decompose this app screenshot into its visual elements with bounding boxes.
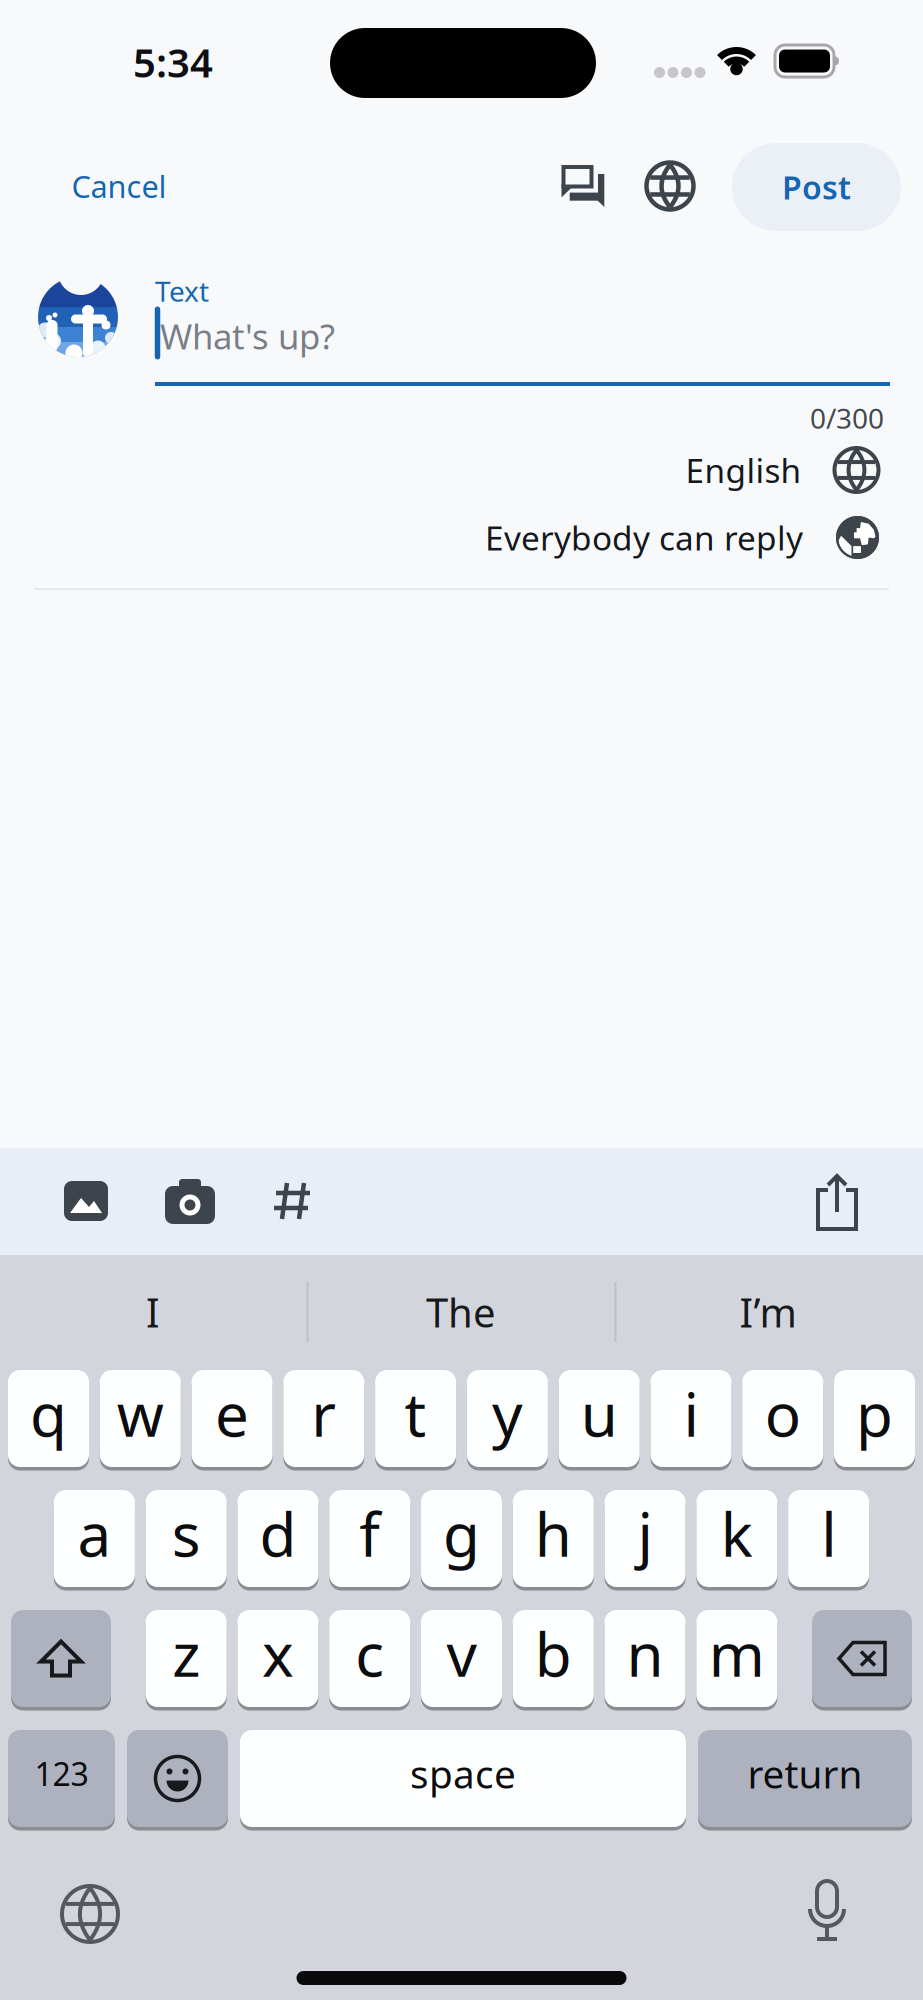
staticText: m [709,1614,765,1693]
button[interactable]: Camera [165,1178,215,1224]
button[interactable]: Share [815,1174,859,1232]
staticText: x [262,1614,294,1693]
staticText: a [77,1494,111,1573]
button[interactable]: space [240,1730,686,1827]
button[interactable]: z [146,1610,227,1707]
button[interactable]: GIF [274,1182,312,1220]
button[interactable]: v [421,1610,502,1707]
staticText: 0/300 [810,399,884,437]
button[interactable]: j [605,1490,686,1587]
button[interactable]: Drafts [560,164,606,210]
button[interactable]: r [283,1370,364,1467]
button[interactable]: u [559,1370,640,1467]
button[interactable]: b [513,1610,594,1707]
button[interactable]: o [742,1370,823,1467]
button[interactable]: Next keyboard [62,1886,118,1942]
staticText: z [172,1614,200,1693]
button[interactable]: k [696,1490,777,1587]
staticText: p [856,1374,893,1453]
button[interactable]: Cancel [71,166,166,206]
button[interactable]: i [650,1370,731,1467]
staticText: f [359,1494,380,1573]
button[interactable]: h [513,1490,594,1587]
staticText: 5:34 [133,35,213,88]
staticText: r [311,1374,336,1453]
button[interactable]: x [237,1610,318,1707]
button[interactable]: w [100,1370,181,1467]
staticText: v [446,1614,476,1693]
button[interactable]: Photos [64,1181,108,1221]
staticText: j [638,1494,653,1573]
button[interactable]: p [834,1370,915,1467]
staticText: d [259,1494,296,1573]
staticText: return [747,1748,862,1799]
button[interactable]: a [54,1490,135,1587]
button[interactable]: e [192,1370,273,1467]
staticText: The [426,1285,496,1338]
button[interactable]: Shift [11,1610,111,1707]
staticText: 123 [34,1752,88,1795]
staticText: Post [782,166,851,208]
button[interactable]: English [685,448,878,492]
button[interactable]: Post [732,143,901,231]
staticText: i [683,1374,698,1453]
button[interactable]: Everybody can reply [485,515,879,560]
staticText: b [535,1614,572,1693]
button[interactable]: q [8,1370,89,1467]
button[interactable]: f [329,1490,410,1587]
staticText: space [410,1748,516,1799]
staticText: k [721,1494,753,1573]
button[interactable]: m [696,1610,777,1707]
button[interactable]: Emoji [127,1730,228,1827]
staticText: e [215,1374,249,1453]
staticText: o [765,1374,801,1453]
staticText: I’m [739,1285,796,1338]
button[interactable]: return [698,1730,912,1827]
staticText: u [581,1374,618,1453]
staticText: l [821,1494,836,1573]
staticText: English [685,448,801,492]
button[interactable]: Dictation [805,1881,849,1943]
button[interactable]: Delete [812,1610,912,1707]
staticText: n [627,1614,664,1693]
button[interactable]: n [605,1610,686,1707]
button[interactable]: s [146,1490,227,1587]
staticText: h [535,1494,572,1573]
staticText: c [355,1614,384,1693]
button[interactable]: g [421,1490,502,1587]
staticText: g [443,1494,480,1573]
button[interactable]: The [426,1285,496,1338]
button[interactable]: l [788,1490,869,1587]
staticText: q [30,1374,67,1453]
button[interactable]: 123 [8,1730,115,1827]
staticText: Cancel [71,166,166,206]
button[interactable]: y [467,1370,548,1467]
staticText: What's up? [160,313,335,359]
button[interactable]: d [237,1490,318,1587]
staticText: y [492,1374,523,1453]
staticText: I [146,1285,160,1338]
staticText: t [405,1374,427,1453]
button[interactable]: Language [646,162,693,209]
button[interactable]: c [329,1610,410,1707]
button[interactable]: I [146,1285,160,1338]
button[interactable]: I’m [739,1285,796,1338]
button[interactable]: t [375,1370,456,1467]
staticText: w [117,1374,164,1453]
staticText: Text [155,272,209,310]
staticText: Everybody can reply [485,515,803,560]
staticText: s [172,1494,201,1573]
